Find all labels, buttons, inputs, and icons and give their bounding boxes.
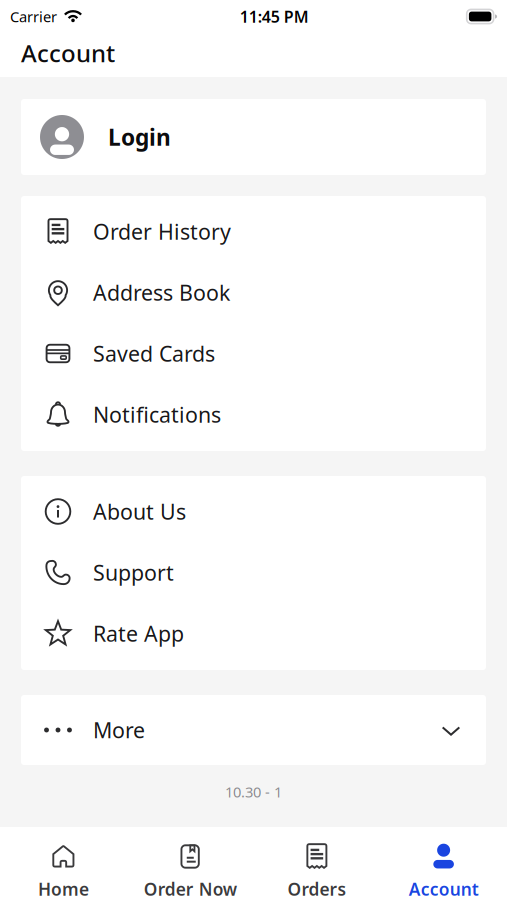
staticText: Saved Cards: [93, 339, 215, 368]
button[interactable]: Order History: [21, 201, 486, 262]
staticText: 11:45 PM: [240, 6, 309, 27]
staticText: Account: [21, 37, 115, 69]
staticText: Rate App: [93, 619, 184, 648]
staticText: Notifications: [93, 400, 221, 429]
staticText: Address Book: [93, 278, 230, 307]
staticText: Orders: [287, 877, 346, 900]
staticText: Support: [93, 558, 174, 587]
button[interactable]: About Us: [21, 481, 486, 542]
staticText: Account: [409, 877, 479, 900]
staticText: Carrier: [10, 7, 57, 26]
button[interactable]: Login: [21, 99, 486, 175]
staticText: 10.30 - 1: [225, 782, 282, 801]
button[interactable]: Order Now: [127, 827, 254, 900]
staticText: Home: [38, 877, 89, 900]
button[interactable]: Orders: [253, 827, 380, 900]
staticText: Order History: [93, 217, 231, 246]
button[interactable]: Notifications: [21, 384, 486, 445]
button[interactable]: Support: [21, 542, 486, 603]
button[interactable]: Account: [380, 827, 507, 900]
button[interactable]: More: [21, 695, 486, 765]
button[interactable]: Saved Cards: [21, 323, 486, 384]
staticText: Order Now: [144, 877, 237, 900]
staticText: About Us: [93, 497, 186, 526]
button[interactable]: Rate App: [21, 603, 486, 664]
button[interactable]: Home: [0, 827, 127, 900]
staticText: Login: [108, 122, 171, 152]
button[interactable]: Address Book: [21, 262, 486, 323]
staticText: More: [93, 716, 145, 744]
